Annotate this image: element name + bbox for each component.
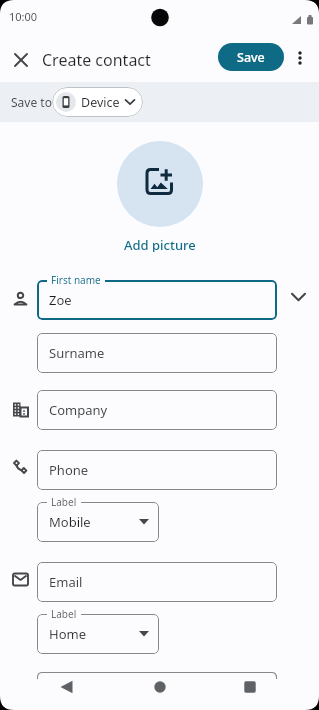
button[interactable]: Company (37, 390, 277, 430)
staticText: Company (49, 401, 108, 419)
staticText: Save (237, 49, 265, 66)
staticText: Save to (11, 94, 52, 110)
button[interactable]: Home (37, 614, 159, 654)
button[interactable] (289, 46, 311, 68)
button[interactable]: Add picture (124, 236, 196, 252)
staticText: Mobile (49, 513, 91, 531)
button[interactable]: Mobile (37, 502, 159, 542)
button[interactable]: Device (52, 87, 143, 117)
staticText: Label (51, 607, 77, 621)
staticText: Surname (49, 344, 105, 362)
button[interactable] (277, 280, 317, 320)
staticText: Zoe (49, 291, 72, 309)
button[interactable] (54, 680, 80, 706)
button[interactable] (237, 680, 263, 706)
button[interactable] (117, 141, 203, 227)
staticText: Home (49, 625, 86, 643)
staticText: Device (81, 94, 120, 111)
button[interactable]: Surname (37, 333, 277, 373)
staticText: Email (49, 573, 83, 591)
button[interactable] (9, 48, 33, 72)
staticText: First name (51, 273, 101, 287)
staticText: Phone (49, 461, 89, 479)
button[interactable]: Phone (37, 450, 277, 490)
staticText: 10:00 (9, 9, 38, 24)
staticText: Label (51, 495, 77, 509)
button[interactable]: Zoe (37, 280, 277, 320)
staticText: Create contact (42, 49, 151, 71)
button[interactable]: Email (37, 562, 277, 602)
button[interactable]: Save (218, 43, 284, 71)
button[interactable] (147, 680, 173, 706)
